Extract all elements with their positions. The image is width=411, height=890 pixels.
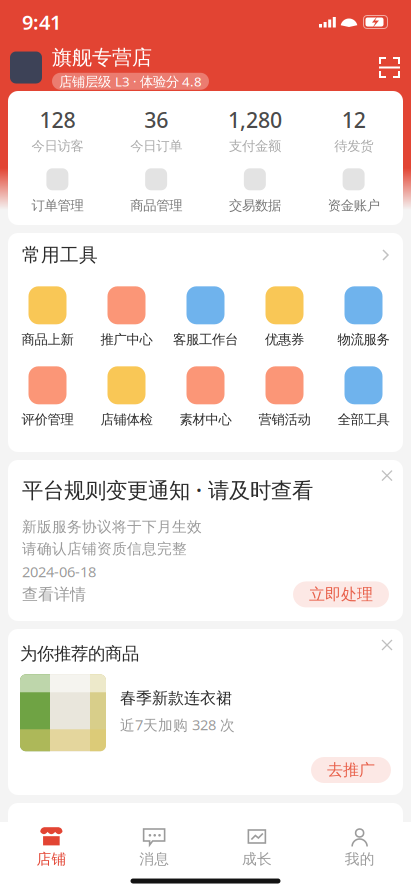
button[interactable]: 店铺头像 xyxy=(10,51,42,83)
staticText: 商品上新 xyxy=(21,331,73,348)
staticText: 为你推荐的商品 xyxy=(20,643,139,664)
button[interactable]: 商品上新 xyxy=(8,277,87,357)
staticText: 平台规则变更通知 · 请及时查看 xyxy=(22,476,313,504)
button[interactable]: 成长 xyxy=(205,822,308,872)
staticText: 128 xyxy=(39,106,75,134)
staticText: 商品管理 xyxy=(130,197,182,214)
staticText: 订单管理 xyxy=(31,197,83,214)
staticText: 36 xyxy=(144,106,168,134)
staticText: 常用工具 xyxy=(22,243,98,266)
button[interactable]: 我的 xyxy=(308,822,411,872)
staticText: 请确认店铺资质信息完整 xyxy=(22,540,187,558)
staticText: 成长 xyxy=(242,850,272,868)
staticText: 店铺 xyxy=(36,850,66,868)
staticText: 消息 xyxy=(139,850,169,868)
button[interactable]: 推广中心 xyxy=(87,277,166,357)
staticText: 2024-06-18 xyxy=(22,562,96,581)
button[interactable]: 12 xyxy=(304,100,403,160)
staticText: 1,280 xyxy=(228,106,282,134)
staticText: 营销活动 xyxy=(258,411,310,428)
staticText: 优惠券 xyxy=(265,331,304,348)
button[interactable]: 订单管理 xyxy=(8,160,107,222)
button[interactable]: 店铺 xyxy=(0,822,103,872)
button[interactable]: 客服工作台 xyxy=(166,277,245,357)
button[interactable]: 关闭 xyxy=(371,629,403,661)
staticText: 9:41 xyxy=(22,9,61,35)
button[interactable]: 营销活动 xyxy=(245,357,324,437)
button[interactable]: 商品管理 xyxy=(107,160,206,222)
staticText: 查看详情 xyxy=(22,585,86,604)
staticText: 推广中心 xyxy=(100,331,152,348)
button[interactable]: 128 xyxy=(8,100,107,160)
staticText: 12 xyxy=(342,106,366,134)
button[interactable]: 评价管理 xyxy=(8,357,87,437)
button[interactable]: 交易数据 xyxy=(205,160,304,222)
staticText: 店铺成长 xyxy=(178,844,246,866)
staticText: 今日访客 xyxy=(31,138,83,154)
staticText: 交易数据 xyxy=(229,197,281,214)
staticText: 资金账户 xyxy=(328,197,380,214)
staticText: 近7天加购 328 次 xyxy=(120,715,235,734)
button[interactable]: 素材中心 xyxy=(166,357,245,437)
button[interactable]: 扫一扫 xyxy=(374,49,405,86)
button[interactable]: 物流服务 xyxy=(324,277,403,357)
staticText: 旗舰专营店 xyxy=(52,45,152,70)
staticText: 物流服务 xyxy=(337,331,389,348)
staticText: 客服工作台 xyxy=(173,331,238,348)
staticText: 我的 xyxy=(345,850,375,868)
staticText: 立即处理 xyxy=(309,585,373,604)
staticText: 全部工具 xyxy=(337,411,389,428)
button[interactable]: 立即处理 xyxy=(293,581,389,607)
button[interactable]: 36 xyxy=(107,100,206,160)
staticText: 今日订单 xyxy=(130,138,182,154)
button[interactable]: 资金账户 xyxy=(304,160,403,222)
button[interactable]: 1,280 xyxy=(205,100,304,160)
staticText: 待发货 xyxy=(334,138,373,154)
staticText: 新版服务协议将于下月生效 xyxy=(22,518,202,536)
button[interactable]: 全部工具 xyxy=(324,357,403,437)
button[interactable]: 常用工具 xyxy=(8,233,403,277)
staticText: 素材中心 xyxy=(179,411,231,428)
button[interactable]: 优惠券 xyxy=(245,277,324,357)
staticText: 评价管理 xyxy=(21,411,73,428)
button[interactable]: 去推广 xyxy=(311,757,391,783)
staticText: 去推广 xyxy=(327,760,375,780)
button[interactable]: 店铺体检 xyxy=(87,357,166,437)
button[interactable]: 消息 xyxy=(103,822,206,872)
button[interactable]: 关闭 xyxy=(371,460,403,492)
staticText: 支付金额 xyxy=(229,138,281,154)
staticText: 店铺体检 xyxy=(100,411,152,428)
staticText: 店铺层级 L3 · 体验分 4.8 xyxy=(59,72,202,90)
staticText: 春季新款连衣裙 xyxy=(120,688,232,708)
